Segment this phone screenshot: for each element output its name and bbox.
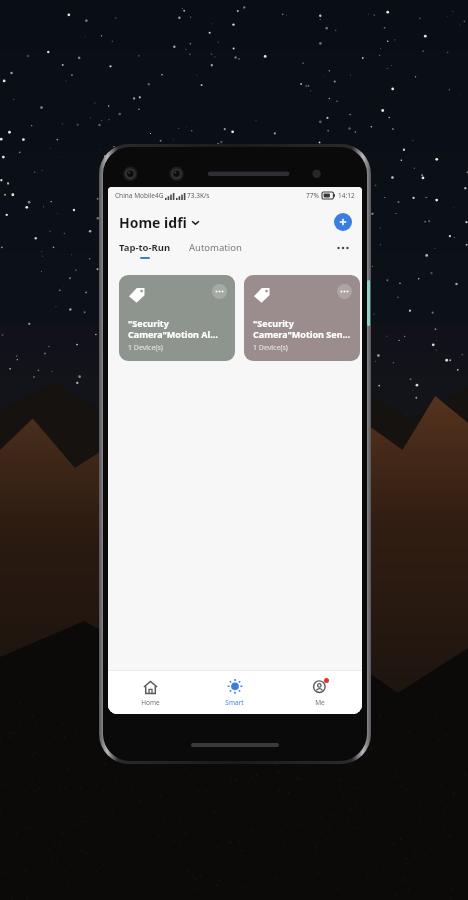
button[interactable]: Home idfi xyxy=(119,213,200,232)
button[interactable]: Me xyxy=(277,670,362,714)
staticText: Home xyxy=(141,698,160,707)
button[interactable]: More options xyxy=(334,241,352,255)
button[interactable]: Add scene xyxy=(334,213,352,231)
staticText: Tap-to-Run xyxy=(119,241,171,254)
staticText: China Mobile4G xyxy=(115,191,164,200)
staticText: "Security Camera"Motion Sen… xyxy=(253,317,351,340)
button[interactable]: Home xyxy=(108,670,192,714)
staticText: Home idfi xyxy=(119,213,187,232)
button[interactable]: Scene options xyxy=(244,275,360,361)
staticText: 14:12 xyxy=(338,191,355,200)
staticText: Me xyxy=(315,698,325,707)
button[interactable]: Automation xyxy=(189,241,242,254)
staticText: Automation xyxy=(189,241,242,254)
button[interactable]: Tap-to-Run xyxy=(119,241,171,259)
button[interactable]: Scene options xyxy=(212,284,227,299)
button[interactable]: Scene options xyxy=(119,275,235,361)
staticText: "Security Camera"Motion Al… xyxy=(128,317,218,340)
staticText: 73.3K/s xyxy=(187,191,210,200)
staticText: 77% xyxy=(306,191,319,200)
staticText: Smart xyxy=(225,698,244,707)
staticText: 1 Device(s) xyxy=(128,343,163,353)
staticText: 1 Device(s) xyxy=(253,343,288,353)
button[interactable]: Smart xyxy=(192,670,277,714)
button[interactable]: Scene options xyxy=(337,284,352,299)
